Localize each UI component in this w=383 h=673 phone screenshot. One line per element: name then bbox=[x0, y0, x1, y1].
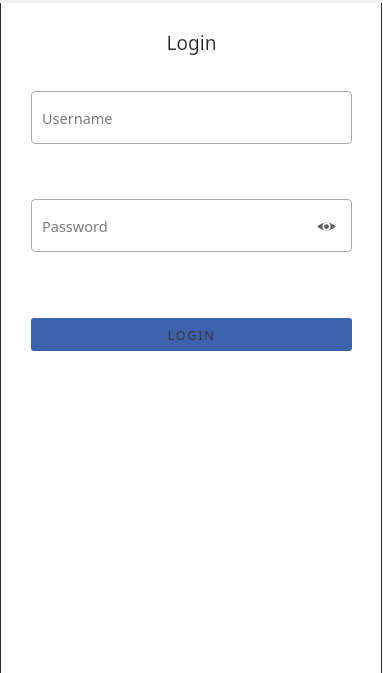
button[interactable]: LOGIN bbox=[31, 318, 352, 351]
staticText: LOGIN bbox=[167, 326, 216, 344]
staticText: Username bbox=[42, 108, 113, 128]
button[interactable]: Show password bbox=[311, 211, 341, 241]
staticText: Password bbox=[42, 216, 108, 236]
button[interactable]: Password bbox=[31, 199, 352, 252]
staticText: Login bbox=[0, 30, 383, 56]
button[interactable]: Username bbox=[31, 91, 352, 144]
